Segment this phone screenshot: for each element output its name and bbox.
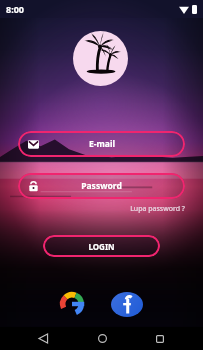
button[interactable]: Back [28, 327, 58, 350]
button[interactable]: Password [18, 173, 185, 199]
staticText: 8:00 [6, 3, 24, 15]
button[interactable]: Sign in with Facebook [111, 292, 143, 317]
button[interactable]: E-mail [18, 131, 185, 157]
staticText: E-mail [89, 138, 115, 150]
button[interactable]: Recent apps [145, 327, 175, 350]
button[interactable]: Sign in with Google [59, 292, 85, 316]
staticText: Lupa password ? [130, 204, 185, 214]
staticText: Password [81, 180, 122, 192]
button[interactable]: Lupa password ? [118, 203, 185, 215]
staticText: LOGIN [88, 241, 115, 252]
button[interactable]: LOGIN [43, 235, 160, 257]
button[interactable]: Home [87, 327, 117, 350]
